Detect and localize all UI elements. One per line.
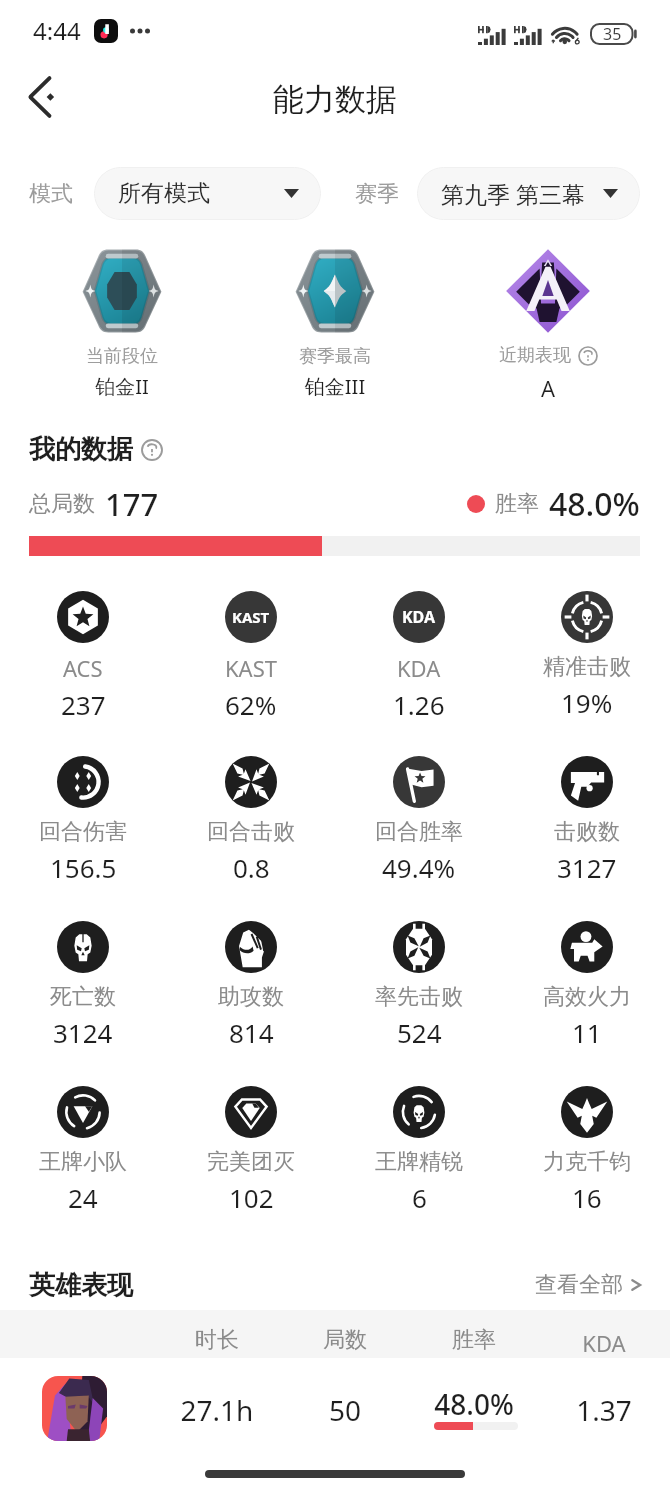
staticText: 时长 bbox=[17, 1326, 417, 1354]
staticText: KDA bbox=[397, 653, 441, 683]
staticText: 1.37 bbox=[404, 1391, 670, 1429]
staticText: 3127 bbox=[557, 850, 617, 885]
button[interactable]: 查看全部 bbox=[535, 1271, 643, 1299]
staticText: 精准击败 bbox=[543, 653, 631, 681]
button[interactable]: ACS bbox=[3, 591, 163, 722]
staticText: 赛季最高 bbox=[135, 345, 535, 368]
staticText: A bbox=[348, 373, 670, 403]
staticText: 所有模式 bbox=[118, 179, 210, 208]
staticText: KDA bbox=[404, 1328, 670, 1358]
staticText: 16 bbox=[572, 1180, 602, 1215]
button[interactable]: 王牌小队 bbox=[3, 1086, 163, 1215]
staticText: 查看全部 bbox=[535, 1271, 623, 1299]
button[interactable]: 所有模式 bbox=[94, 167, 321, 220]
staticText: ACS bbox=[63, 653, 103, 683]
staticText: 27.1h bbox=[17, 1391, 417, 1429]
staticText: 回合胜率 bbox=[375, 818, 463, 846]
staticText: 模式 bbox=[29, 180, 73, 208]
staticText: 35 bbox=[603, 23, 622, 45]
button[interactable]: 回合胜率 bbox=[339, 756, 499, 885]
button[interactable]: 第九季 第三幕 bbox=[417, 167, 640, 220]
staticText: 当前段位 bbox=[0, 345, 322, 368]
staticText: 回合击败 bbox=[207, 818, 295, 846]
button[interactable]: Back bbox=[12, 67, 72, 127]
staticText: 近期表现 bbox=[499, 344, 571, 367]
staticText: 156.5 bbox=[50, 850, 117, 885]
staticText: 王牌小队 bbox=[39, 1148, 127, 1176]
staticText: 总局数 bbox=[29, 490, 95, 518]
button[interactable]: 精准击败 bbox=[507, 591, 667, 720]
staticText: 赛季 bbox=[355, 180, 399, 208]
staticText: 率先击败 bbox=[375, 983, 463, 1011]
staticText: 高效火力 bbox=[543, 983, 631, 1011]
button[interactable]: 完美团灭 bbox=[171, 1086, 331, 1215]
staticText: 6 bbox=[412, 1180, 427, 1215]
staticText: KAST bbox=[225, 653, 277, 683]
staticText: 击败数 bbox=[554, 818, 620, 846]
staticText: 49.4% bbox=[382, 850, 456, 885]
button[interactable]: 击败数 bbox=[507, 756, 667, 885]
staticText: 铂金III bbox=[135, 373, 535, 400]
button[interactable]: 死亡数 bbox=[3, 921, 163, 1050]
staticText: 回合伤害 bbox=[39, 818, 127, 846]
staticText: 237 bbox=[61, 687, 106, 722]
staticText: 王牌精锐 bbox=[375, 1148, 463, 1176]
button[interactable]: 回合伤害 bbox=[3, 756, 163, 885]
button[interactable]: 回合击败 bbox=[171, 756, 331, 885]
staticText: 能力数据 bbox=[273, 80, 397, 119]
staticText: 814 bbox=[229, 1015, 274, 1050]
staticText: 1.26 bbox=[393, 687, 445, 722]
staticText: 力克千钧 bbox=[543, 1148, 631, 1176]
button[interactable]: 助攻数 bbox=[171, 921, 331, 1050]
staticText: 4:44 bbox=[33, 14, 81, 47]
button[interactable]: 王牌精锐 bbox=[339, 1086, 499, 1215]
staticText: 24 bbox=[68, 1180, 98, 1215]
staticText: KAST bbox=[232, 607, 270, 627]
staticText: 48.0% bbox=[549, 482, 640, 526]
button[interactable]: 力克千钧 bbox=[507, 1086, 667, 1215]
staticText: 局数 bbox=[145, 1326, 545, 1354]
staticText: 胜率 bbox=[495, 490, 539, 518]
staticText: 62% bbox=[225, 687, 277, 722]
staticText: 11 bbox=[572, 1015, 602, 1050]
button[interactable]: KAST bbox=[171, 591, 331, 722]
staticText: 524 bbox=[397, 1015, 442, 1050]
button[interactable]: KDA bbox=[339, 591, 499, 722]
staticText: 英雄表现 bbox=[29, 1269, 133, 1302]
staticText: 胜率 bbox=[274, 1326, 670, 1354]
button[interactable]: 率先击败 bbox=[339, 921, 499, 1050]
staticText: 我的数据 bbox=[29, 433, 133, 466]
staticText: 铂金II bbox=[0, 373, 322, 400]
staticText: 102 bbox=[229, 1180, 274, 1215]
staticText: 0.8 bbox=[233, 850, 270, 885]
button[interactable]: 高效火力 bbox=[507, 921, 667, 1050]
button[interactable] bbox=[0, 1358, 670, 1454]
staticText: 48.0% bbox=[274, 1385, 670, 1423]
staticText: 3124 bbox=[53, 1015, 113, 1050]
staticText: 177 bbox=[105, 483, 159, 525]
staticText: 助攻数 bbox=[218, 983, 284, 1011]
staticText: KDA bbox=[402, 606, 436, 628]
staticText: 50 bbox=[145, 1391, 545, 1429]
staticText: 完美团灭 bbox=[207, 1148, 295, 1176]
staticText: 第九季 第三幕 bbox=[441, 178, 585, 209]
staticText: 死亡数 bbox=[50, 983, 116, 1011]
staticText: 19% bbox=[561, 685, 613, 720]
